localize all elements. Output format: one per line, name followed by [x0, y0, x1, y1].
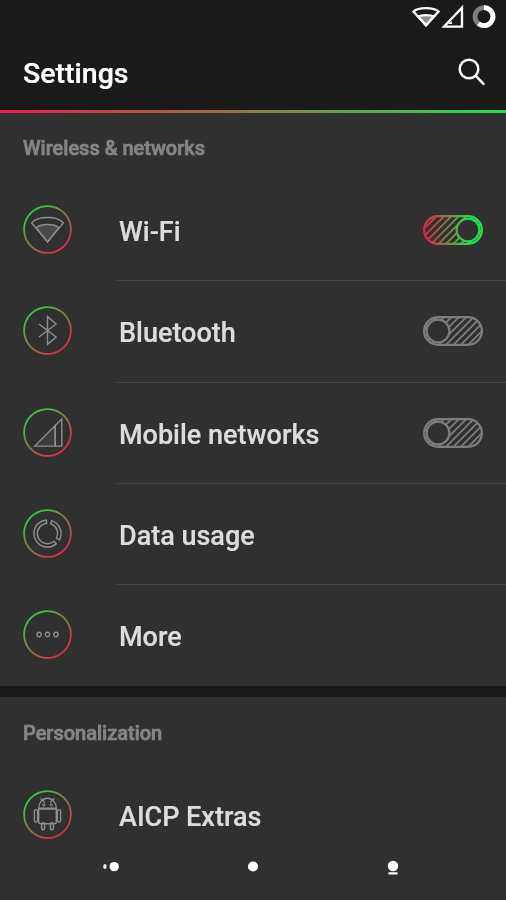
staticText: Personalization	[23, 721, 163, 744]
button[interactable]: Wi-Fi	[0, 179, 506, 280]
button[interactable]: Search	[437, 46, 485, 94]
staticText: Wireless & networks	[23, 136, 205, 159]
staticText: More	[119, 621, 182, 653]
button[interactable]: Bluetooth	[0, 280, 506, 381]
staticText: Wi-Fi	[119, 216, 181, 248]
staticText: Data usage	[119, 520, 255, 552]
button[interactable]: Recents	[358, 834, 428, 900]
button[interactable]: AICP Extras	[0, 764, 506, 865]
button[interactable]: Data usage	[0, 483, 506, 584]
button[interactable]: More	[0, 584, 506, 685]
button[interactable]: Back	[78, 834, 148, 900]
staticText: Bluetooth	[119, 317, 236, 349]
staticText: Settings	[23, 57, 129, 90]
staticText: Mobile networks	[119, 419, 320, 451]
button[interactable]: Mobile networks	[0, 382, 506, 483]
button[interactable]: Home	[218, 834, 288, 900]
staticText: AICP Extras	[119, 801, 262, 833]
